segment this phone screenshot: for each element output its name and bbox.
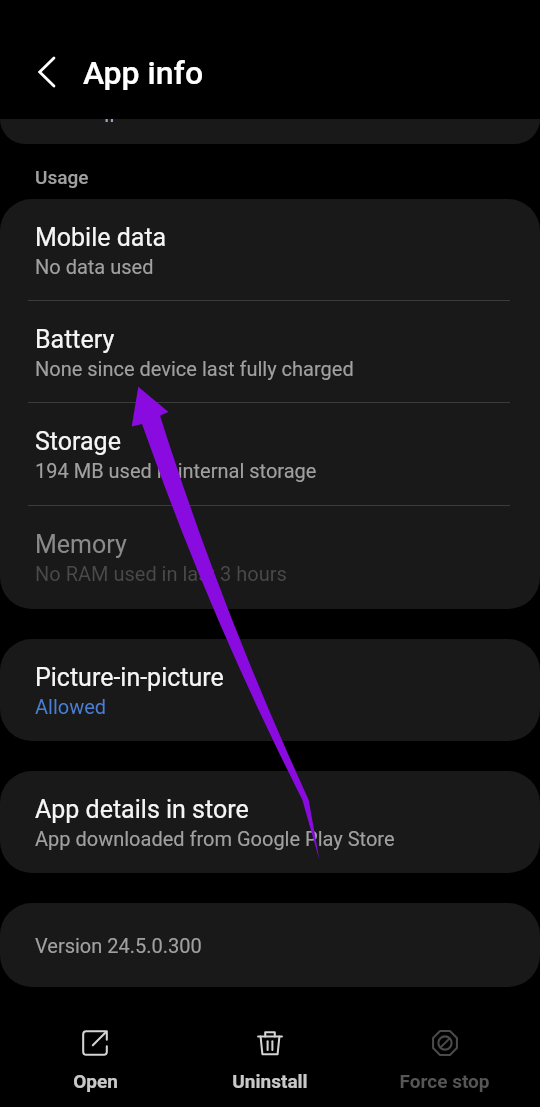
staticText: Uninstall bbox=[232, 1070, 308, 1092]
staticText: Force stop bbox=[399, 1070, 490, 1092]
staticText: Picture-in-picture bbox=[35, 663, 224, 692]
button[interactable]: Memory bbox=[0, 506, 540, 609]
staticText: Version 24.5.0.300 bbox=[35, 934, 202, 957]
staticText: Open bbox=[73, 1070, 118, 1092]
staticText: 194 MB used in internal storage bbox=[35, 459, 317, 482]
button[interactable]: Picture-in-picture bbox=[0, 639, 540, 741]
staticText: Allowed bbox=[35, 695, 107, 718]
button[interactable]: Uninstall bbox=[182, 997, 357, 1107]
staticText: App details in store bbox=[35, 795, 249, 824]
button[interactable]: Back bbox=[21, 46, 73, 98]
staticText: App info bbox=[83, 54, 204, 92]
button[interactable]: App details in store bbox=[0, 771, 540, 873]
button[interactable]: Storage bbox=[0, 403, 540, 506]
staticText: App downloaded from Google Play Store bbox=[35, 827, 395, 850]
staticText: Memory bbox=[35, 530, 127, 559]
button[interactable]: Open bbox=[8, 997, 182, 1107]
button[interactable]: Battery bbox=[0, 301, 540, 403]
button[interactable]: Mobile data bbox=[0, 199, 540, 301]
button[interactable]: Version 24.5.0.300 bbox=[0, 903, 540, 987]
staticText: Mobile data bbox=[35, 223, 167, 252]
staticText: None since device last fully charged bbox=[35, 357, 354, 380]
staticText: ll bbox=[104, 119, 115, 127]
staticText: Battery bbox=[35, 325, 115, 354]
staticText: No data used bbox=[35, 255, 154, 278]
staticText: Storage bbox=[35, 427, 121, 456]
button[interactable]: Force stop bbox=[357, 997, 532, 1107]
staticText: Usage bbox=[35, 166, 89, 188]
staticText: No RAM used in last 3 hours bbox=[35, 562, 287, 585]
